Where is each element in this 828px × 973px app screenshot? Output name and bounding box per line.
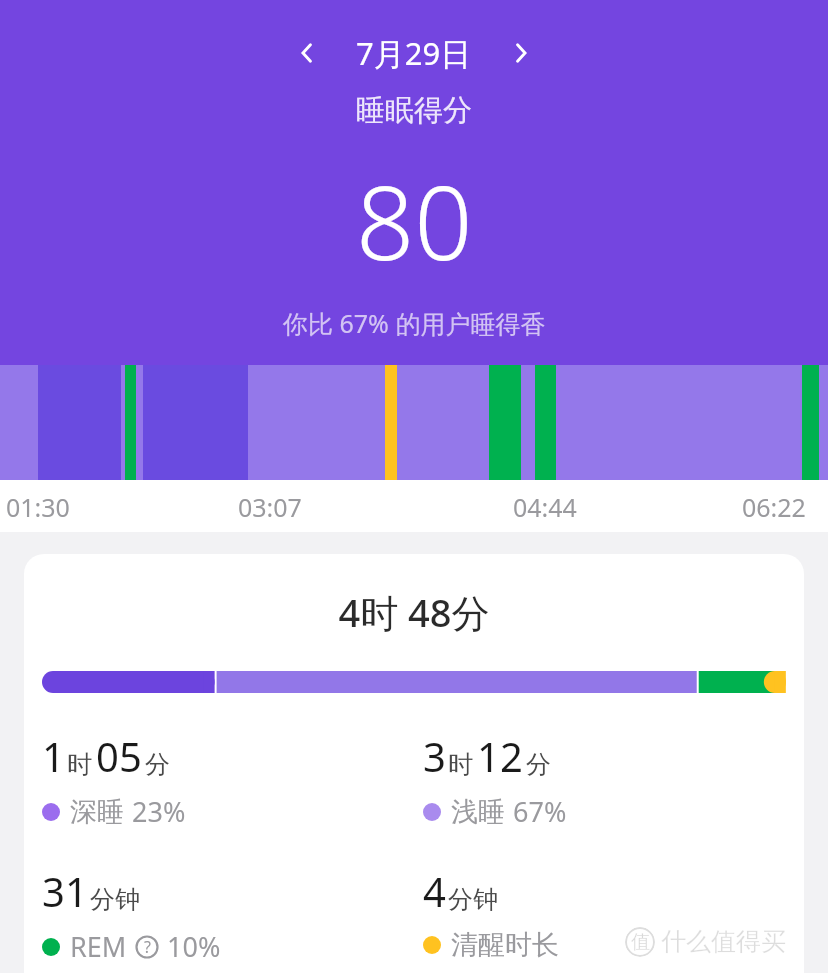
staticText: 3 (423, 729, 446, 783)
staticText: REM (70, 928, 127, 965)
staticText: 深睡 (70, 795, 124, 829)
button[interactable]: REM info (135, 935, 159, 959)
staticText: 分钟 (90, 884, 140, 915)
staticText: 你比 67% 的用户睡得香 (283, 306, 546, 340)
button[interactable]: Previous day (280, 26, 334, 80)
staticText: 浅睡 (451, 795, 505, 829)
staticText: 12 (477, 729, 523, 783)
staticText: 分钟 (448, 884, 498, 915)
staticText: 01:30 (6, 490, 70, 524)
staticText: 清醒时长 (451, 928, 559, 962)
staticText: ? (144, 936, 151, 958)
button[interactable]: 1 (42, 729, 423, 830)
staticText: 4 (423, 864, 446, 918)
button[interactable]: 3 (423, 729, 804, 830)
staticText: 什么值得买 (661, 926, 786, 957)
staticText: 80 (356, 151, 473, 290)
staticText: 值 (631, 930, 650, 954)
staticText: 时 (67, 749, 92, 780)
button[interactable]: 4 (423, 864, 804, 962)
staticText: 睡眠得分 (356, 92, 472, 129)
staticText: 1 (42, 729, 65, 783)
staticText: 05 (96, 729, 142, 783)
staticText: 4时 48分 (338, 586, 490, 638)
button[interactable]: Next day (494, 26, 548, 80)
staticText: 分 (145, 749, 170, 780)
staticText: 10% (167, 928, 221, 965)
staticText: 03:07 (238, 490, 302, 524)
staticText: 06:22 (742, 490, 806, 524)
button[interactable]: 31 (42, 864, 423, 965)
staticText: 分 (526, 749, 551, 780)
staticText: 23% (132, 793, 186, 830)
staticText: 31 (42, 864, 88, 918)
staticText: 67% (513, 793, 567, 830)
staticText: 7月29日 (356, 32, 472, 74)
staticText: 时 (448, 749, 473, 780)
staticText: 04:44 (513, 490, 577, 524)
